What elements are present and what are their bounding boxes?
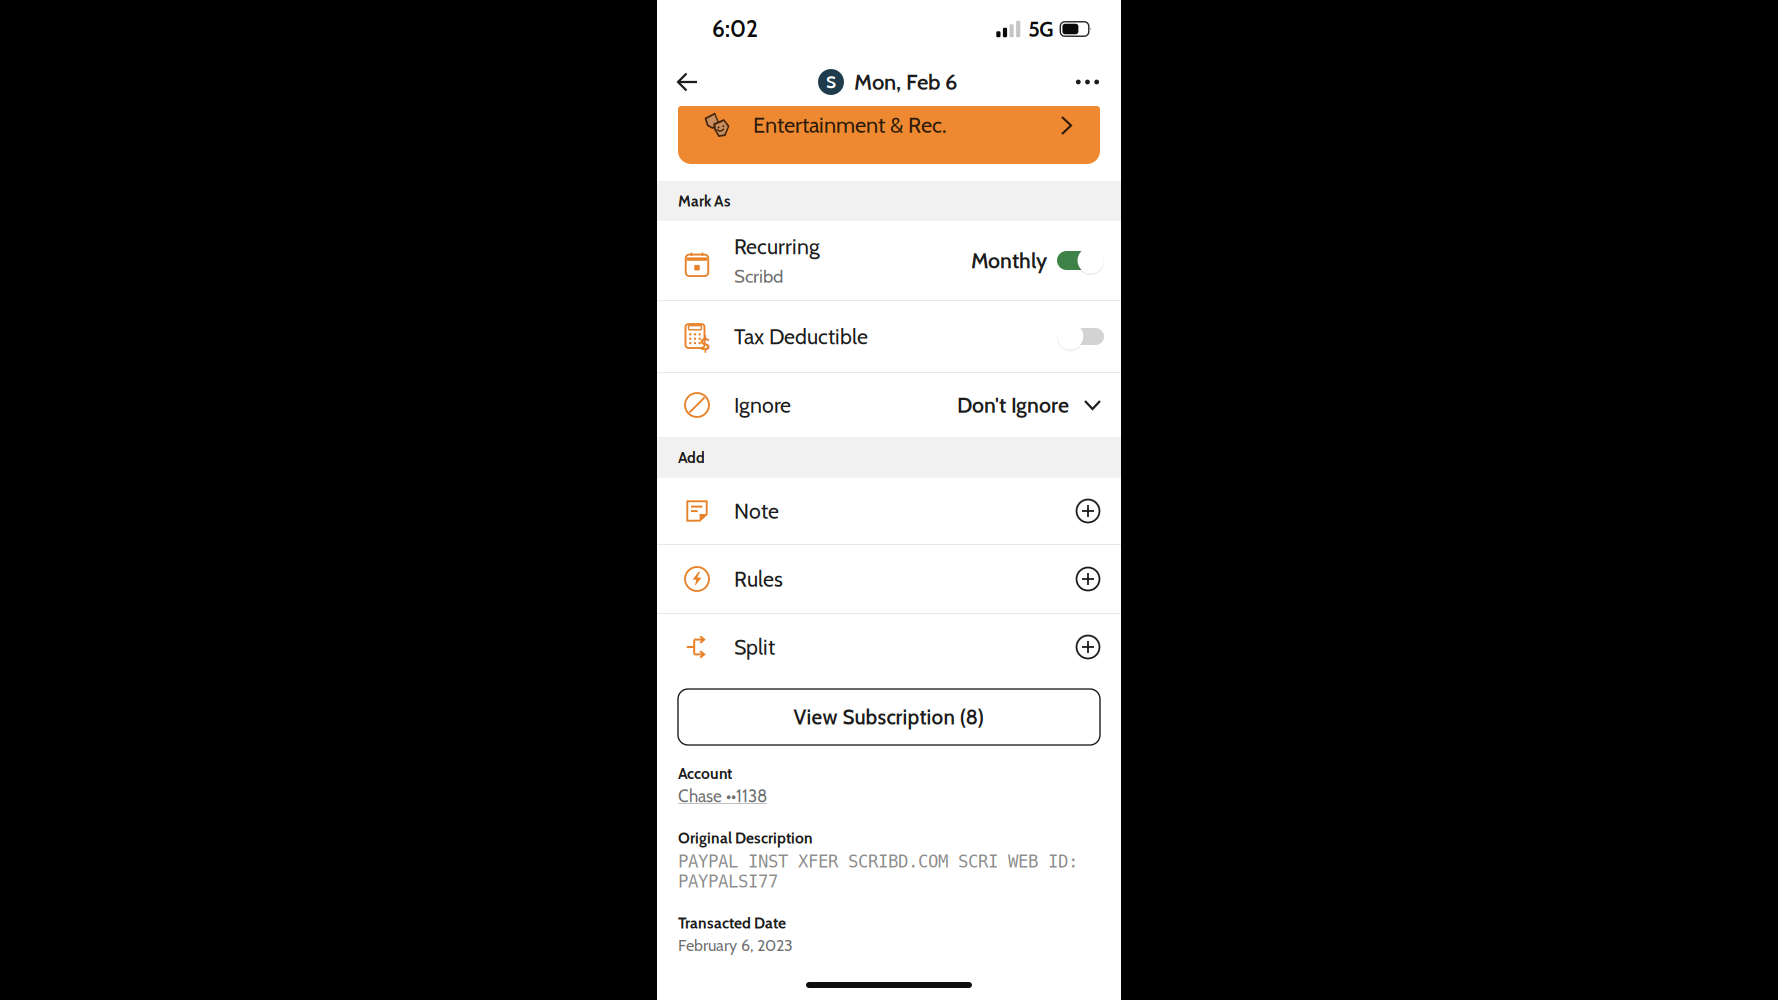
- staticText: Recurring: [734, 234, 820, 260]
- staticText: Mon, Feb 6: [854, 69, 957, 95]
- staticText: Transacted Date: [678, 914, 786, 932]
- staticText: Account: [678, 764, 732, 783]
- button[interactable]: Back: [671, 60, 704, 104]
- staticText: Chase ••1138: [678, 786, 767, 806]
- button[interactable]: Recurring: [657, 221, 1121, 300]
- staticText: Don't Ignore: [957, 392, 1069, 418]
- button[interactable]: $: [657, 301, 1121, 372]
- staticText: Note: [734, 498, 779, 524]
- staticText: Rules: [734, 566, 783, 592]
- button[interactable]: Entertainment & Rec.: [678, 106, 1100, 164]
- staticText: 6:02: [712, 15, 758, 43]
- staticText: $: [700, 333, 710, 355]
- staticText: 5G: [1028, 16, 1053, 42]
- button[interactable]: Rules: [657, 545, 1121, 613]
- staticText: Split: [734, 634, 775, 660]
- staticText: Monthly: [971, 247, 1047, 273]
- staticText: Original Description: [678, 828, 813, 847]
- button[interactable]: Split: [657, 614, 1121, 680]
- staticText: Tax Deductible: [734, 323, 868, 349]
- button[interactable]: View Subscription (8): [678, 689, 1100, 745]
- staticText: Ignore: [734, 392, 791, 418]
- staticText: Add: [678, 448, 705, 467]
- staticText: Entertainment & Rec.: [753, 112, 947, 138]
- staticText: PAYPAL INST XFER SCRIBD.COM SCRI WEB ID:…: [678, 851, 1078, 892]
- staticText: S: [826, 71, 836, 93]
- button[interactable]: More options: [1071, 60, 1104, 104]
- staticText: February 6, 2023: [678, 935, 793, 955]
- staticText: View Subscription (8): [793, 704, 984, 729]
- staticText: Scribd: [734, 265, 783, 287]
- button[interactable]: Note: [657, 478, 1121, 544]
- staticText: Mark As: [678, 192, 730, 210]
- button[interactable]: Chase ••1138: [678, 783, 767, 806]
- button[interactable]: Ignore: [657, 373, 1121, 437]
